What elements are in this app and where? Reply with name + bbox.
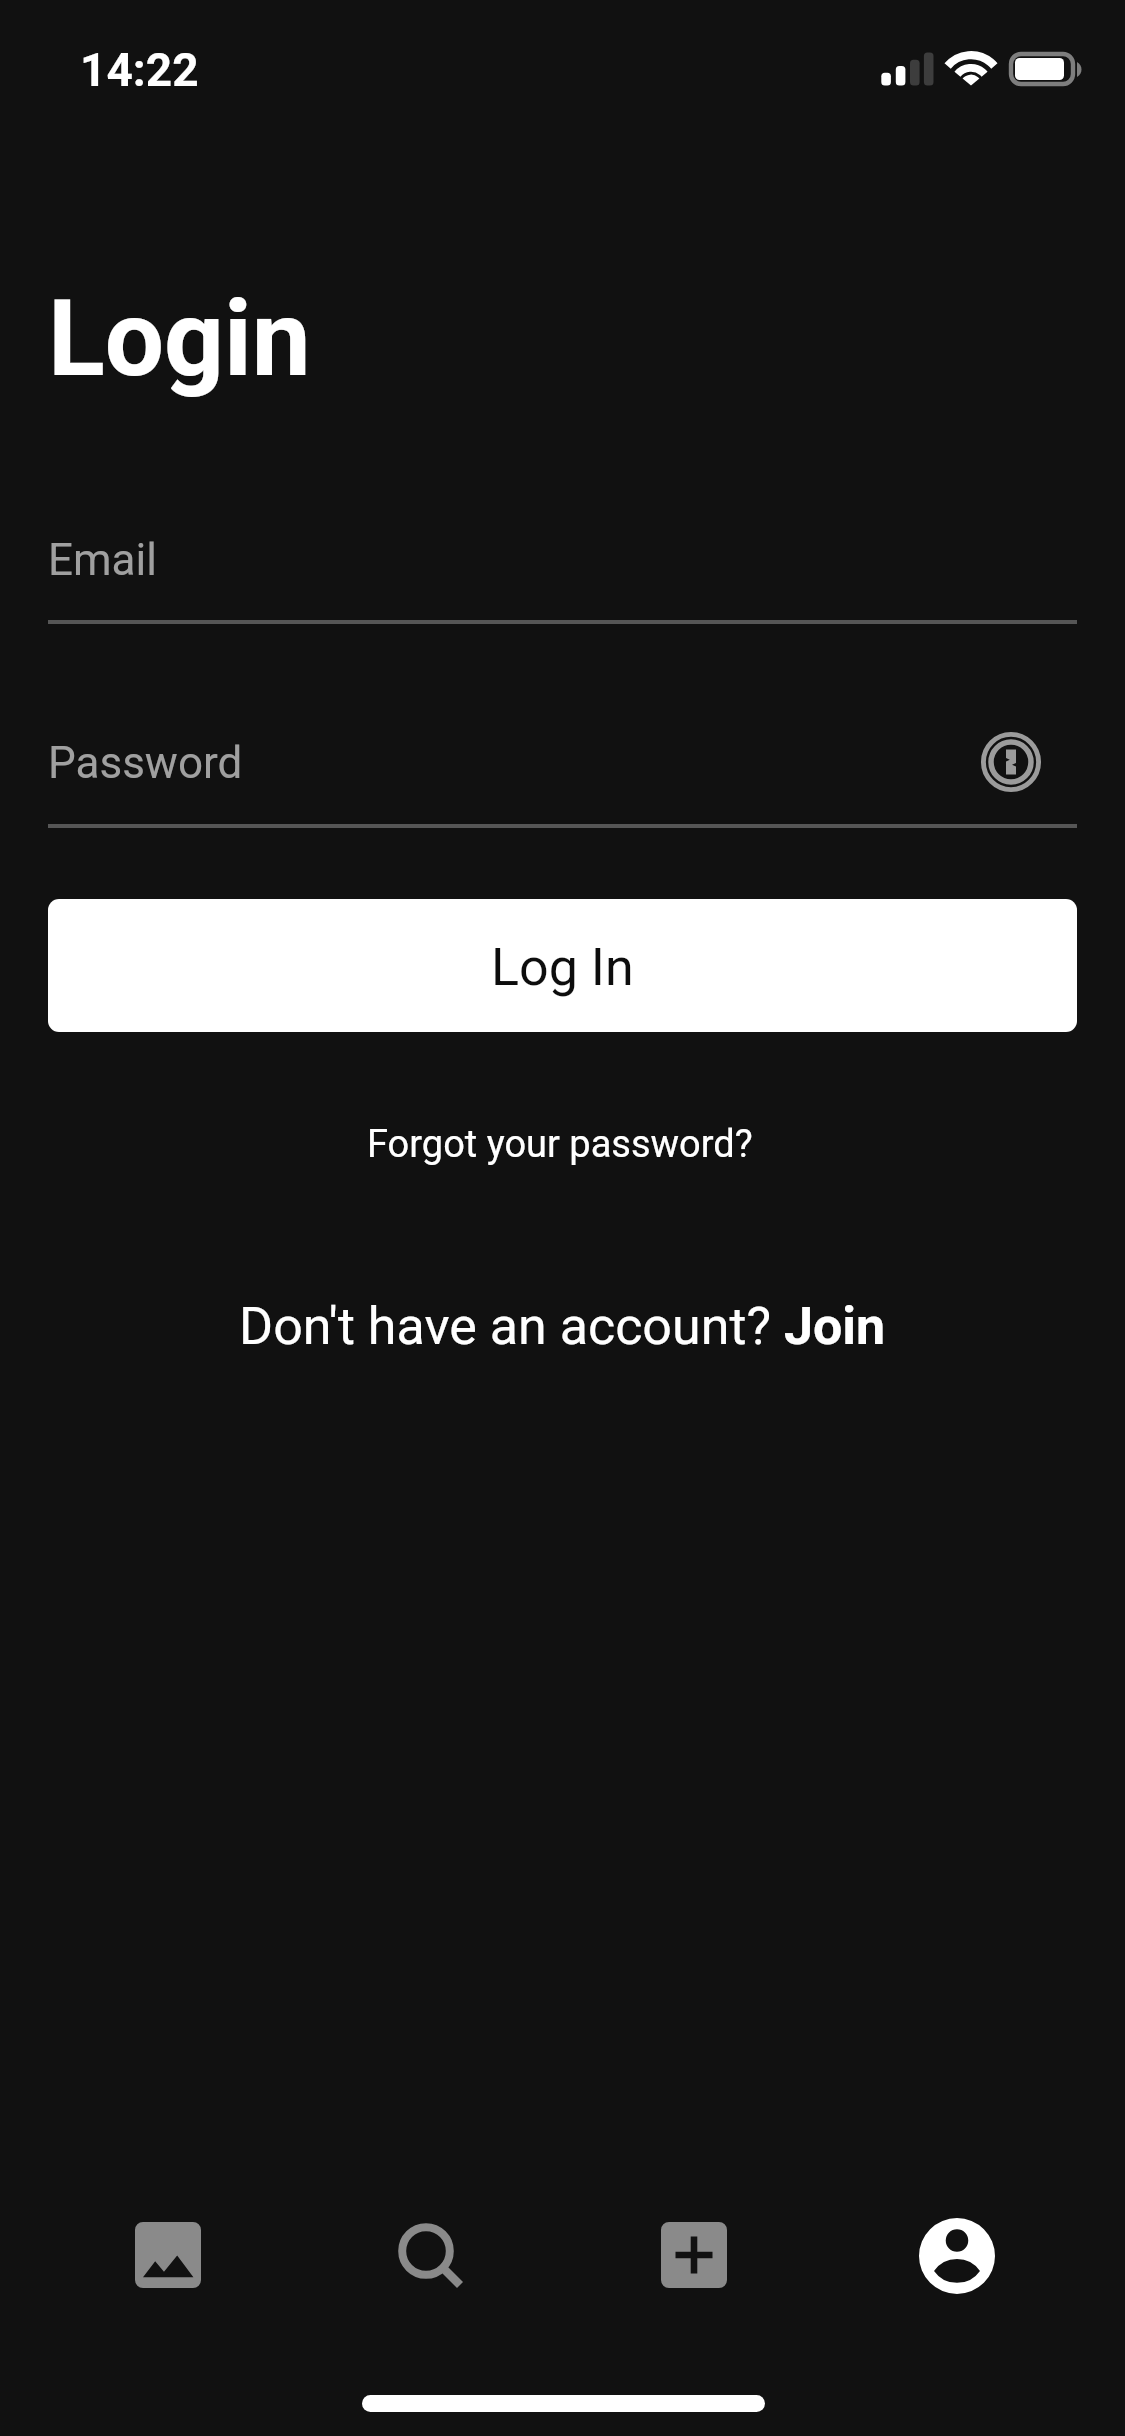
button[interactable]: Don't have an account? Join bbox=[215, 1288, 910, 1364]
button[interactable]: 1Password autofill bbox=[981, 732, 1041, 792]
staticText: Don't have an account? Join bbox=[239, 1296, 886, 1357]
staticText: Log In bbox=[491, 937, 634, 998]
staticText: Password bbox=[48, 737, 243, 789]
button[interactable]: Password bbox=[48, 714, 1077, 829]
staticText: Login bbox=[48, 278, 311, 401]
button[interactable]: Log In bbox=[48, 899, 1077, 1032]
button[interactable]: Photos bbox=[98, 2185, 238, 2325]
button[interactable]: Search bbox=[361, 2186, 501, 2326]
button[interactable]: Forgot your password? bbox=[342, 1110, 777, 1178]
button[interactable]: Profile bbox=[887, 2186, 1027, 2326]
button[interactable]: Create bbox=[624, 2185, 764, 2325]
staticText: Email bbox=[48, 534, 157, 586]
staticText: Forgot your password? bbox=[367, 1122, 753, 1167]
button[interactable]: Email bbox=[48, 511, 1077, 626]
staticText: 14:22 bbox=[80, 43, 199, 97]
